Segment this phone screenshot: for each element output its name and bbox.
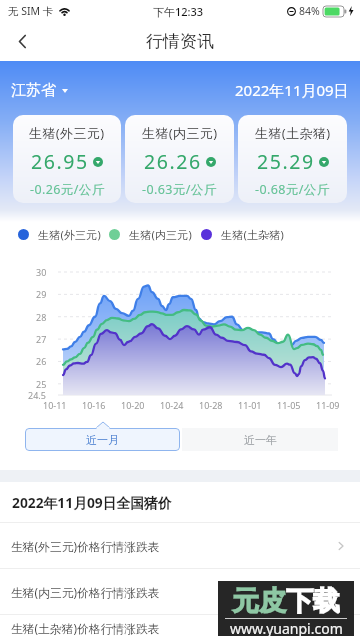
staticText: 下午12:33 [153, 4, 204, 19]
staticText: 生猪(内三元) [129, 227, 192, 242]
button[interactable]: 生猪(土杂猪) [238, 115, 347, 203]
staticText: 27 [36, 333, 47, 345]
staticText: 10-28 [199, 399, 223, 411]
staticText: -0.68元/公斤 [255, 181, 330, 198]
staticText: 11-05 [277, 399, 301, 411]
staticText: 生猪(外三元) [29, 124, 105, 142]
button[interactable]: 生猪(外三元)价格行情涨跌表 [0, 523, 360, 568]
staticText: 25.29 [257, 148, 315, 175]
staticText: 84% [299, 4, 320, 18]
staticText: 生猪(土杂猪) [255, 124, 331, 142]
staticText: -0.26元/公斤 [30, 181, 105, 198]
staticText: 10-24 [160, 399, 184, 411]
staticText: 无 SIM 卡 [8, 4, 54, 18]
button[interactable]: 生猪(外三元) [13, 115, 121, 203]
button[interactable]: 生猪(土杂猪)价格行情涨跌表 [0, 615, 360, 640]
staticText: 生猪(内三元)价格行情涨跌表 [11, 584, 160, 600]
staticText: 生猪(土杂猪) [221, 227, 284, 242]
staticText: 10-11 [43, 399, 67, 411]
staticText: 行情资讯 [146, 31, 214, 52]
staticText: 24.5 [28, 389, 46, 401]
staticText: 2022年11月09日 [235, 80, 349, 100]
button[interactable]: 近一月 [25, 428, 180, 451]
staticText: 25 [36, 378, 47, 390]
button[interactable]: Back [0, 22, 44, 61]
button[interactable]: 近一年 [182, 428, 338, 451]
staticText: 30 [36, 266, 47, 278]
button[interactable]: 生猪(内三元)价格行情涨跌表 [0, 569, 360, 614]
staticText: 生猪(外三元)价格行情涨跌表 [11, 538, 160, 554]
button[interactable]: 江苏省 [11, 81, 68, 100]
staticText: 2022年11月09日全国猪价 [12, 493, 172, 512]
staticText: 生猪(土杂猪)价格行情涨跌表 [11, 620, 160, 636]
staticText: 下载 [286, 584, 340, 618]
staticText: 生猪(外三元) [38, 227, 101, 242]
staticText: 26.95 [31, 148, 89, 175]
staticText: 28 [36, 311, 47, 323]
staticText: 近一月 [86, 433, 119, 447]
staticText: -0.63元/公斤 [142, 181, 217, 198]
staticText: 11-01 [238, 399, 262, 411]
staticText: 29 [36, 288, 47, 300]
staticText: 10-20 [121, 399, 145, 411]
staticText: 生猪(内三元) [142, 124, 218, 142]
button[interactable]: 生猪(内三元) [125, 115, 234, 203]
staticText: 江苏省 [11, 81, 56, 100]
staticText: www.yuanpi.com [230, 619, 343, 636]
staticText: 26.26 [144, 148, 202, 175]
staticText: 元皮 [232, 584, 286, 618]
staticText: 近一年 [244, 433, 277, 447]
staticText: 11-09 [316, 399, 340, 411]
staticText: 10-16 [82, 399, 106, 411]
staticText: 26 [36, 355, 47, 367]
